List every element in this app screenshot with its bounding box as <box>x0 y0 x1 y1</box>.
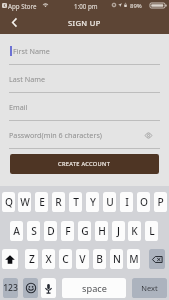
button[interactable]: Q <box>2 192 15 212</box>
staticText: 1:00 pm <box>74 2 98 10</box>
button[interactable]: Show password <box>144 131 152 139</box>
staticText: A <box>13 224 20 238</box>
button[interactable]: T <box>69 192 82 212</box>
button[interactable]: Last Name <box>0 65 169 93</box>
button[interactable]: K <box>128 221 141 241</box>
staticText: Q <box>5 195 13 209</box>
staticText: 89% <box>130 2 142 10</box>
button[interactable]: B <box>93 249 106 269</box>
button[interactable]: O <box>137 192 150 212</box>
button[interactable]: S <box>27 221 40 241</box>
button[interactable]: H <box>95 221 108 241</box>
staticText: E <box>39 195 45 209</box>
staticText: First Name <box>13 46 50 56</box>
staticText: I <box>125 195 129 209</box>
button[interactable]: 123 <box>3 278 18 298</box>
staticText: App Store <box>8 2 37 10</box>
button[interactable]: N <box>110 249 123 269</box>
button[interactable]: C <box>59 249 72 269</box>
staticText: W <box>20 195 30 209</box>
button[interactable]: Next <box>132 278 167 298</box>
staticText: CREATE ACCOUNT <box>58 160 111 168</box>
staticText: H <box>98 224 106 238</box>
button[interactable]: W <box>18 192 31 212</box>
button[interactable]: Z <box>25 249 38 269</box>
button[interactable]: First Name <box>0 37 169 65</box>
button[interactable]: Y <box>86 192 99 212</box>
button[interactable]: Password(min 6 characters) <box>0 121 169 149</box>
button[interactable]: F <box>61 221 74 241</box>
button[interactable]: Voice input <box>41 278 56 298</box>
staticText: O <box>140 195 148 209</box>
staticText: Z <box>29 252 35 266</box>
staticText: Next <box>141 283 158 293</box>
button[interactable]: Shift <box>2 249 18 269</box>
staticText: Y <box>90 195 96 209</box>
staticText: N <box>113 252 121 266</box>
button[interactable]: Backspace <box>149 249 165 269</box>
button[interactable]: space <box>62 278 126 298</box>
button[interactable]: Email <box>0 93 169 121</box>
button[interactable]: R <box>52 192 65 212</box>
staticText: G <box>81 224 89 238</box>
staticText: 123 <box>3 282 18 294</box>
staticText: Email <box>9 102 28 112</box>
staticText: D <box>47 224 55 238</box>
button[interactable]: U <box>103 192 116 212</box>
button[interactable]: E <box>35 192 48 212</box>
staticText: J <box>117 224 120 238</box>
button[interactable]: X <box>42 249 55 269</box>
staticText: K <box>131 224 138 238</box>
button[interactable]: L <box>145 221 158 241</box>
staticText: R <box>55 195 62 209</box>
button[interactable]: G <box>78 221 91 241</box>
staticText: F <box>65 224 71 238</box>
staticText: C <box>62 252 69 266</box>
button[interactable]: D <box>44 221 57 241</box>
staticText: M <box>129 252 139 266</box>
staticText: S <box>31 224 37 238</box>
staticText: L <box>149 224 155 238</box>
staticText: SIGN UP <box>68 18 101 28</box>
button[interactable]: Back <box>3 11 25 34</box>
staticText: B <box>96 252 103 266</box>
staticText: V <box>79 252 86 266</box>
staticText: Last Name <box>9 74 45 84</box>
button[interactable]: CREATE ACCOUNT <box>10 154 159 174</box>
staticText: Password(min 6 characters) <box>9 130 102 140</box>
staticText: space <box>82 282 107 295</box>
button[interactable]: M <box>127 249 140 269</box>
staticText: X <box>45 252 52 266</box>
button[interactable]: V <box>76 249 89 269</box>
staticText: T <box>73 195 79 209</box>
button[interactable]: Emoji <box>23 278 38 298</box>
button[interactable]: J <box>112 221 125 241</box>
button[interactable]: P <box>154 192 167 212</box>
staticText: U <box>106 195 114 209</box>
button[interactable]: A <box>10 221 23 241</box>
button[interactable]: I <box>120 192 133 212</box>
staticText: P <box>157 195 164 209</box>
